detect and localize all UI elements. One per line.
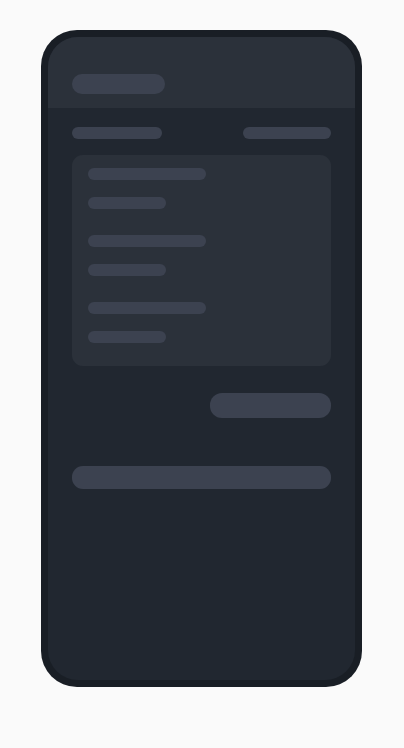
button[interactable]: Loading content card (72, 155, 331, 366)
button[interactable]: Title placeholder (72, 74, 165, 94)
button[interactable]: Primary action button placeholder (210, 393, 331, 418)
button[interactable]: Footer bar placeholder (72, 466, 331, 489)
button[interactable]: Section label placeholder (72, 127, 162, 139)
button[interactable]: Action label placeholder (243, 127, 331, 139)
